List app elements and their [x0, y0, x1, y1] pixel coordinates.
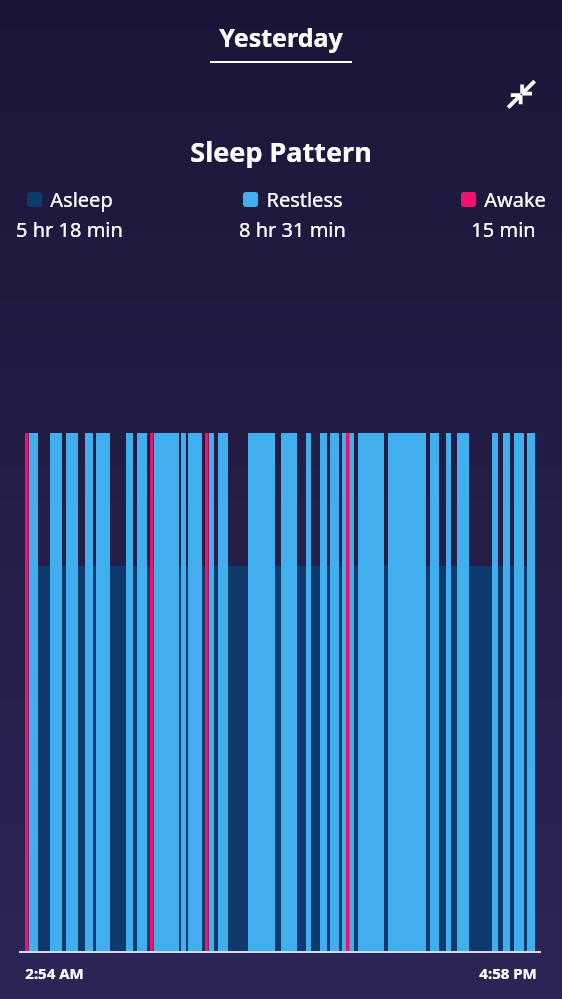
staticText: 5 hr 18 min	[16, 216, 123, 243]
staticText: Restless	[266, 186, 343, 213]
staticText: 2:54 AM	[25, 963, 84, 983]
staticText: Sleep Pattern	[190, 133, 372, 170]
staticText: Awake	[484, 186, 546, 213]
button[interactable]: Awake	[457, 186, 550, 243]
button[interactable]: Collapse	[502, 75, 540, 113]
staticText: 15 min	[471, 216, 536, 243]
staticText: 8 hr 31 min	[239, 216, 346, 243]
button[interactable]: Restless	[235, 186, 350, 243]
staticText: Yesterday	[219, 20, 343, 54]
staticText: Asleep	[50, 186, 113, 213]
button[interactable]: Asleep	[12, 186, 127, 243]
staticText: 4:58 PM	[479, 963, 537, 983]
